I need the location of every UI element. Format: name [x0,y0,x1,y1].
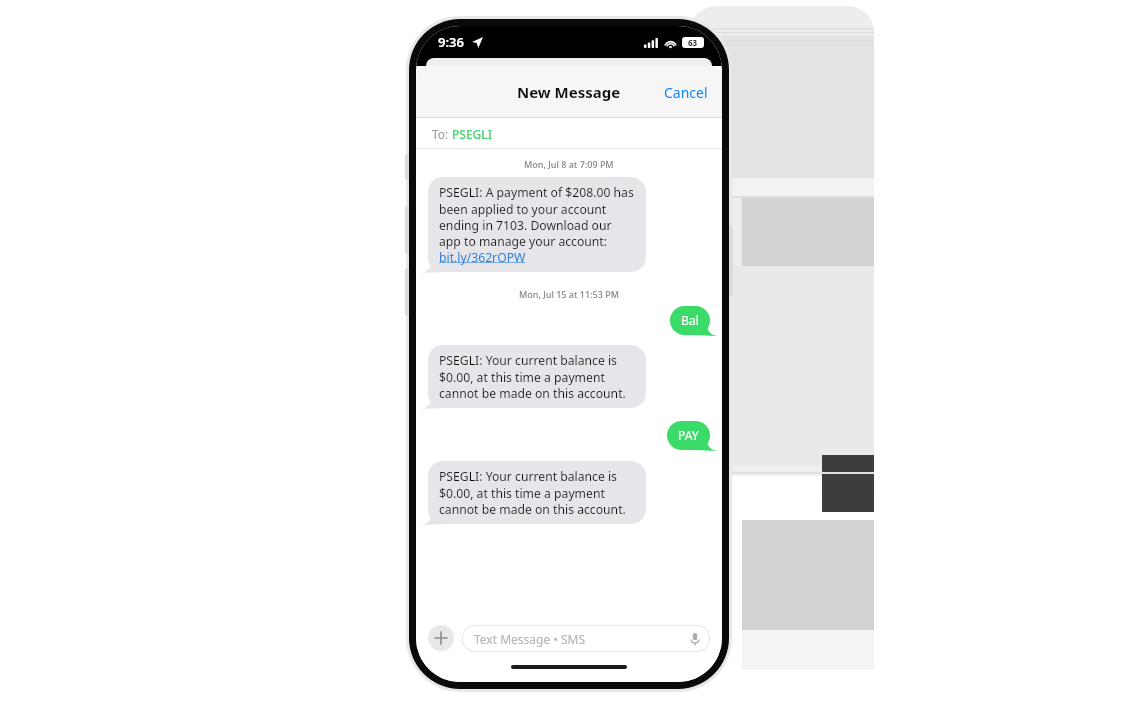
button[interactable]: PSEGLI: A payment of $208.00 has been ap… [428,177,646,272]
button[interactable]: Cancel [650,73,722,112]
button[interactable]: Bal [670,306,710,335]
staticText: 63 [688,37,698,48]
staticText: New Message [517,82,621,102]
button[interactable]: PSEGLI: Your current balance is $0.00, a… [428,345,646,408]
button[interactable]: Dictate [688,632,702,646]
staticText: To: [432,126,452,142]
button[interactable]: To: [416,118,722,149]
button[interactable]: PAY [667,421,710,450]
button[interactable]: Text Message • SMS [462,625,710,652]
staticText: PSEGLI: Your current balance is $0.00, a… [439,468,635,517]
button[interactable]: Add attachment [428,625,454,651]
staticText: Bal [681,312,699,329]
button[interactable]: PSEGLI: Your current balance is $0.00, a… [428,461,646,524]
staticText: Cancel [664,83,708,102]
staticText: Mon, Jul 8 at 7:09 PM [524,158,614,170]
staticText: Mon, Jul 15 at 11:53 PM [519,288,619,300]
staticText: 9:36 [438,33,464,51]
staticText: PSEGLI [452,126,492,142]
staticText: Text Message • SMS [474,631,586,647]
staticText: PSEGLI: Your current balance is $0.00, a… [439,352,635,401]
staticText: PSEGLI: A payment of $208.00 has been ap… [439,184,635,265]
staticText: PAY [678,427,699,444]
